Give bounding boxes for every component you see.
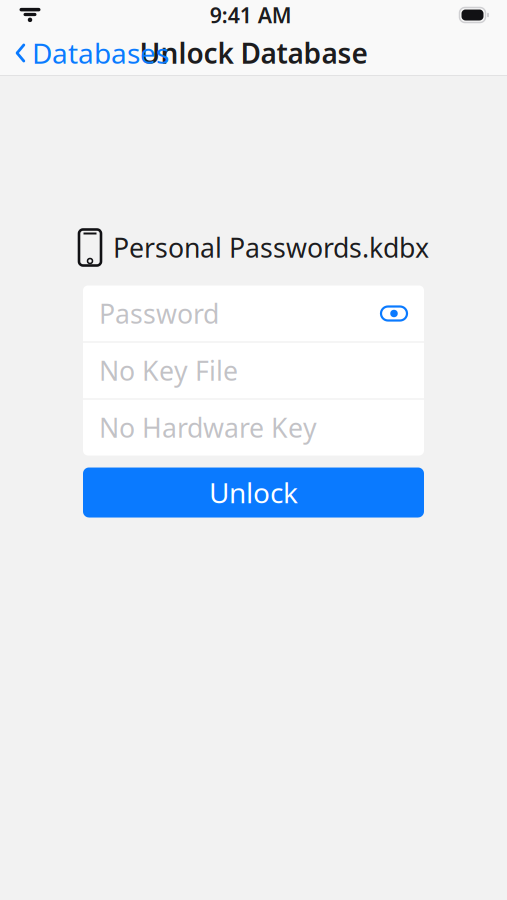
staticText: Password [99,296,219,331]
button[interactable]: Show password [372,285,416,341]
staticText: No Hardware Key [99,410,317,445]
staticText: No Key File [99,353,238,388]
staticText: Unlock Database [139,34,367,72]
staticText: Personal Passwords.kdbx [113,230,429,265]
staticText: Databases [32,34,169,72]
button[interactable]: Unlock [83,467,424,517]
button[interactable]: Databases [0,30,183,76]
staticText: Unlock [209,474,298,511]
button[interactable]: No Hardware Key [83,399,424,455]
button[interactable]: No Key File [83,342,424,398]
staticText: 9:41 AM [210,1,292,29]
